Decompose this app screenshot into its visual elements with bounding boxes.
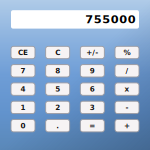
button[interactable]: 1	[11, 101, 35, 114]
staticText: .	[56, 121, 59, 130]
button[interactable]: .	[46, 119, 70, 132]
staticText: 6	[90, 85, 95, 93]
button[interactable]: 3	[80, 101, 104, 114]
button[interactable]: %	[115, 46, 139, 59]
staticText: -	[125, 103, 128, 112]
staticText: 755000	[85, 13, 136, 26]
button[interactable]: +	[115, 119, 139, 132]
staticText: %	[123, 48, 130, 57]
staticText: 5	[55, 85, 60, 93]
staticText: 0	[20, 121, 25, 130]
staticText: 9	[90, 67, 95, 75]
staticText: 2	[55, 103, 60, 112]
staticText: 3	[90, 103, 95, 112]
button[interactable]: 4	[11, 83, 35, 95]
button[interactable]: 2	[46, 101, 70, 114]
staticText: 1	[20, 103, 25, 112]
button[interactable]: 0	[11, 119, 35, 132]
button[interactable]: CE	[11, 46, 35, 59]
button[interactable]: /	[115, 65, 139, 77]
staticText: /	[125, 67, 128, 75]
button[interactable]: =	[80, 119, 104, 132]
staticText: +/-	[86, 48, 98, 57]
button[interactable]: 5	[46, 83, 70, 95]
staticText: 8	[55, 67, 60, 75]
staticText: CE	[18, 48, 28, 57]
button[interactable]: 8	[46, 65, 70, 77]
button[interactable]: -	[115, 101, 139, 114]
staticText: +	[124, 121, 130, 130]
button[interactable]: 6	[80, 83, 104, 95]
staticText: C	[55, 48, 60, 57]
button[interactable]: x	[115, 83, 139, 95]
button[interactable]: +/-	[80, 46, 104, 59]
staticText: 7	[20, 67, 25, 75]
button[interactable]: 9	[80, 65, 104, 77]
staticText: x	[124, 85, 129, 93]
staticText: 4	[20, 85, 25, 93]
staticText: =	[89, 121, 95, 130]
button[interactable]: 7	[11, 65, 35, 77]
button[interactable]: C	[46, 46, 70, 59]
